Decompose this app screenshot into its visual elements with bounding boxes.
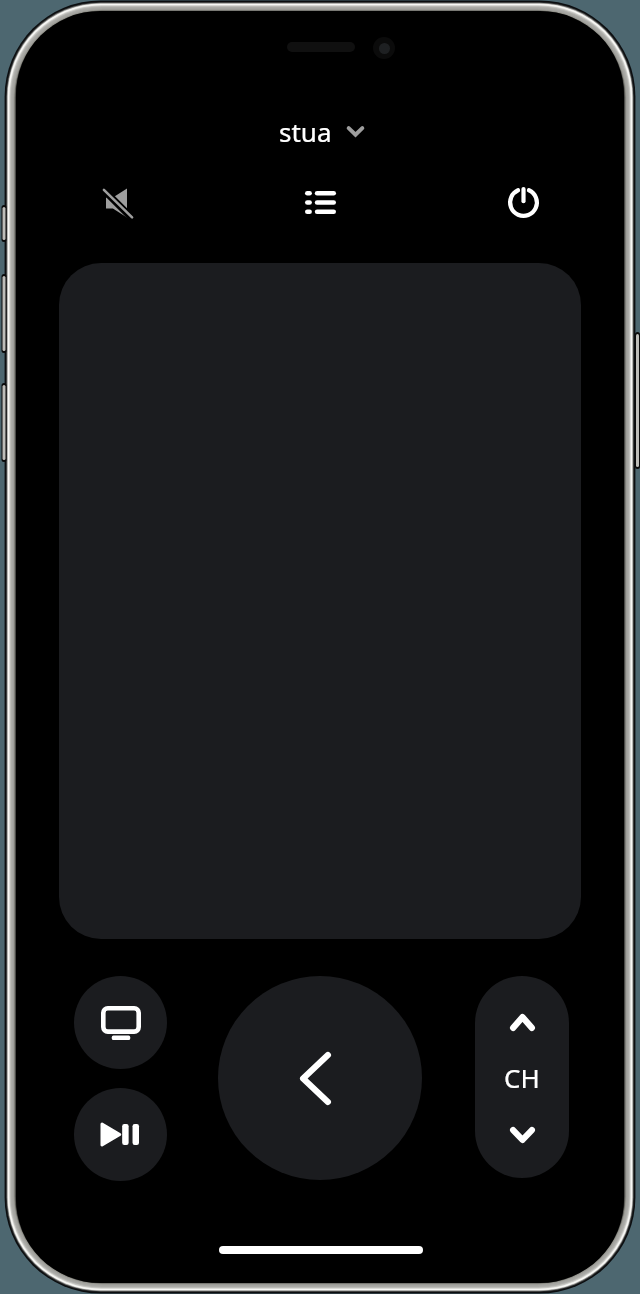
button[interactable]: Channel list [288, 170, 353, 235]
button[interactable]: CH [475, 1055, 569, 1099]
button[interactable]: Channel up [475, 976, 569, 1069]
button[interactable]: Play pause [74, 1088, 167, 1181]
staticText: stua [279, 114, 332, 149]
button[interactable]: Back [218, 976, 422, 1180]
button[interactable]: Channel down [475, 1091, 569, 1178]
button[interactable]: TV input [74, 976, 167, 1069]
button[interactable]: stua [279, 110, 394, 152]
staticText: CH [504, 1060, 540, 1095]
button[interactable]: Power [491, 170, 556, 235]
button[interactable]: Mute [85, 170, 150, 235]
